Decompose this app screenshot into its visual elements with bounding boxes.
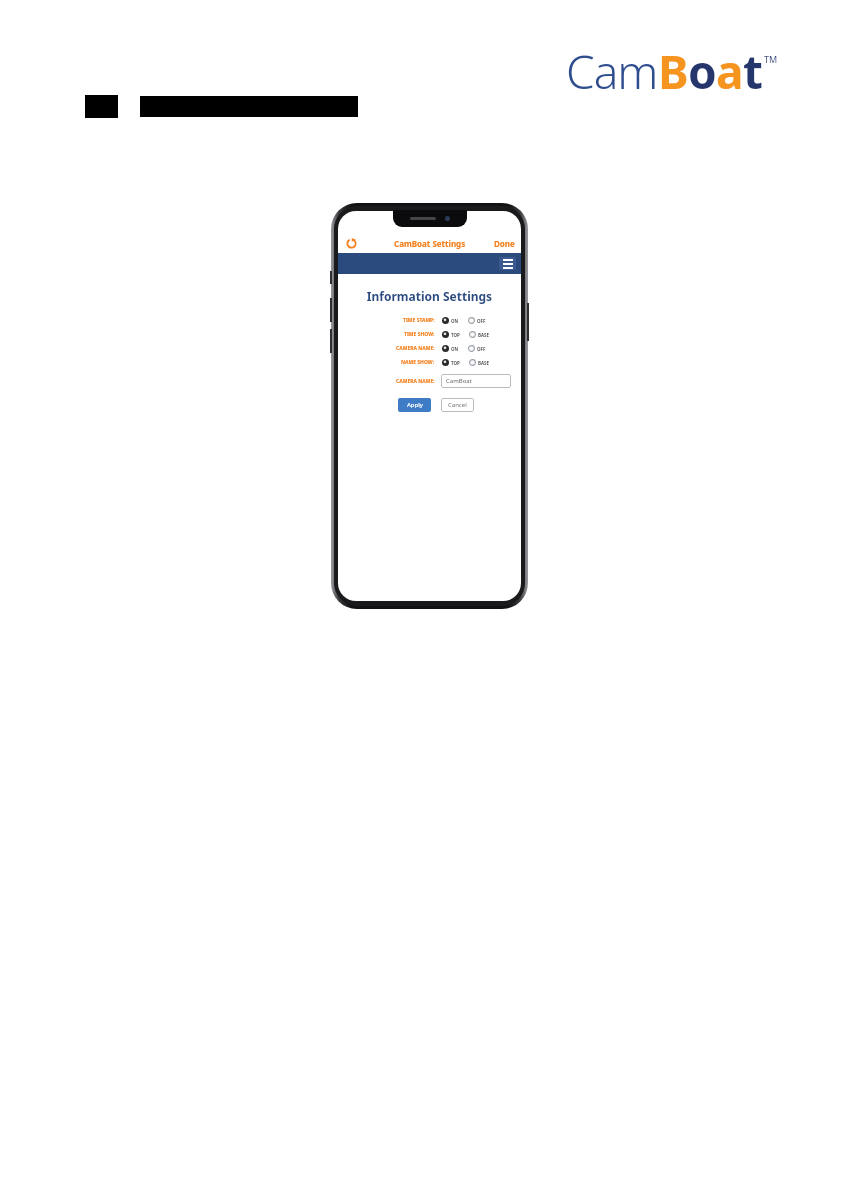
staticText: BASE (478, 332, 490, 338)
button[interactable]: Cam (566, 40, 786, 102)
button[interactable]: TOP (442, 331, 460, 338)
button[interactable]: ON (442, 317, 459, 324)
staticText: NAME SHOW: (401, 359, 435, 366)
staticText: OFF (477, 346, 486, 352)
staticText: Cam (566, 40, 658, 102)
button[interactable]: OFF (468, 345, 486, 352)
staticText: Information Settings (338, 288, 521, 304)
staticText: o (688, 40, 716, 102)
button[interactable]: BASE (469, 331, 490, 338)
button[interactable]: Refresh (343, 235, 359, 251)
staticText: Done (494, 238, 515, 249)
staticText: TM (764, 53, 778, 65)
staticText: a (716, 40, 743, 102)
button[interactable]: OFF (468, 317, 486, 324)
staticText: CAMERA NAME: (396, 378, 435, 385)
button[interactable]: Menu (499, 257, 516, 270)
button[interactable]: BASE (469, 359, 490, 366)
button[interactable]: Done (494, 238, 515, 249)
staticText: ON (451, 318, 459, 324)
staticText: Cancel (448, 401, 467, 409)
staticText: OFF (477, 318, 486, 324)
staticText: Apply (407, 401, 423, 409)
staticText: BASE (478, 360, 490, 366)
button[interactable]: Apply (398, 398, 431, 412)
staticText: TOP (451, 332, 460, 338)
staticText: t (743, 40, 762, 102)
staticText: TIME SHOW: (404, 331, 435, 338)
staticText: CAMERA NAME: (396, 345, 435, 352)
staticText: CamBoat (446, 377, 472, 385)
staticText: B (658, 40, 688, 102)
button[interactable]: CamBoat (441, 374, 511, 388)
button[interactable]: ON (442, 345, 459, 352)
staticText: CamBoat Settings (394, 238, 466, 249)
button[interactable]: Cancel (441, 398, 474, 412)
staticText: ON (451, 346, 459, 352)
button[interactable]: TOP (442, 359, 460, 366)
staticText: TOP (451, 360, 460, 366)
staticText: TIME STAMP: (403, 317, 435, 324)
